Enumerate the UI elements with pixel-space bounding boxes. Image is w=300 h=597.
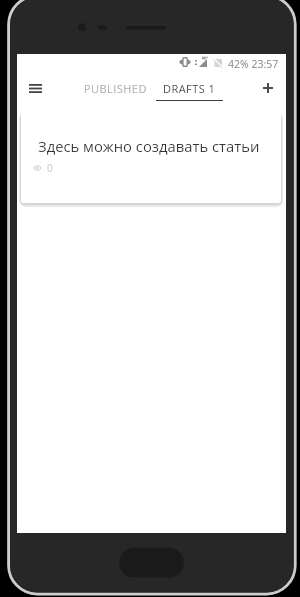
- staticText: DRAFTS 1: [163, 81, 216, 96]
- button[interactable]: PUBLISHED: [69, 76, 162, 101]
- staticText: Здесь можно создавать статьи: [38, 136, 260, 156]
- button[interactable]: Add: [256, 76, 280, 100]
- button[interactable]: Здесь можно создавать статьи: [21, 112, 281, 203]
- staticText: 0: [47, 161, 53, 175]
- button[interactable]: DRAFTS 1: [156, 76, 223, 101]
- staticText: PUBLISHED: [84, 81, 147, 96]
- staticText: 42% 23:57: [228, 57, 279, 71]
- button[interactable]: Menu: [23, 76, 47, 100]
